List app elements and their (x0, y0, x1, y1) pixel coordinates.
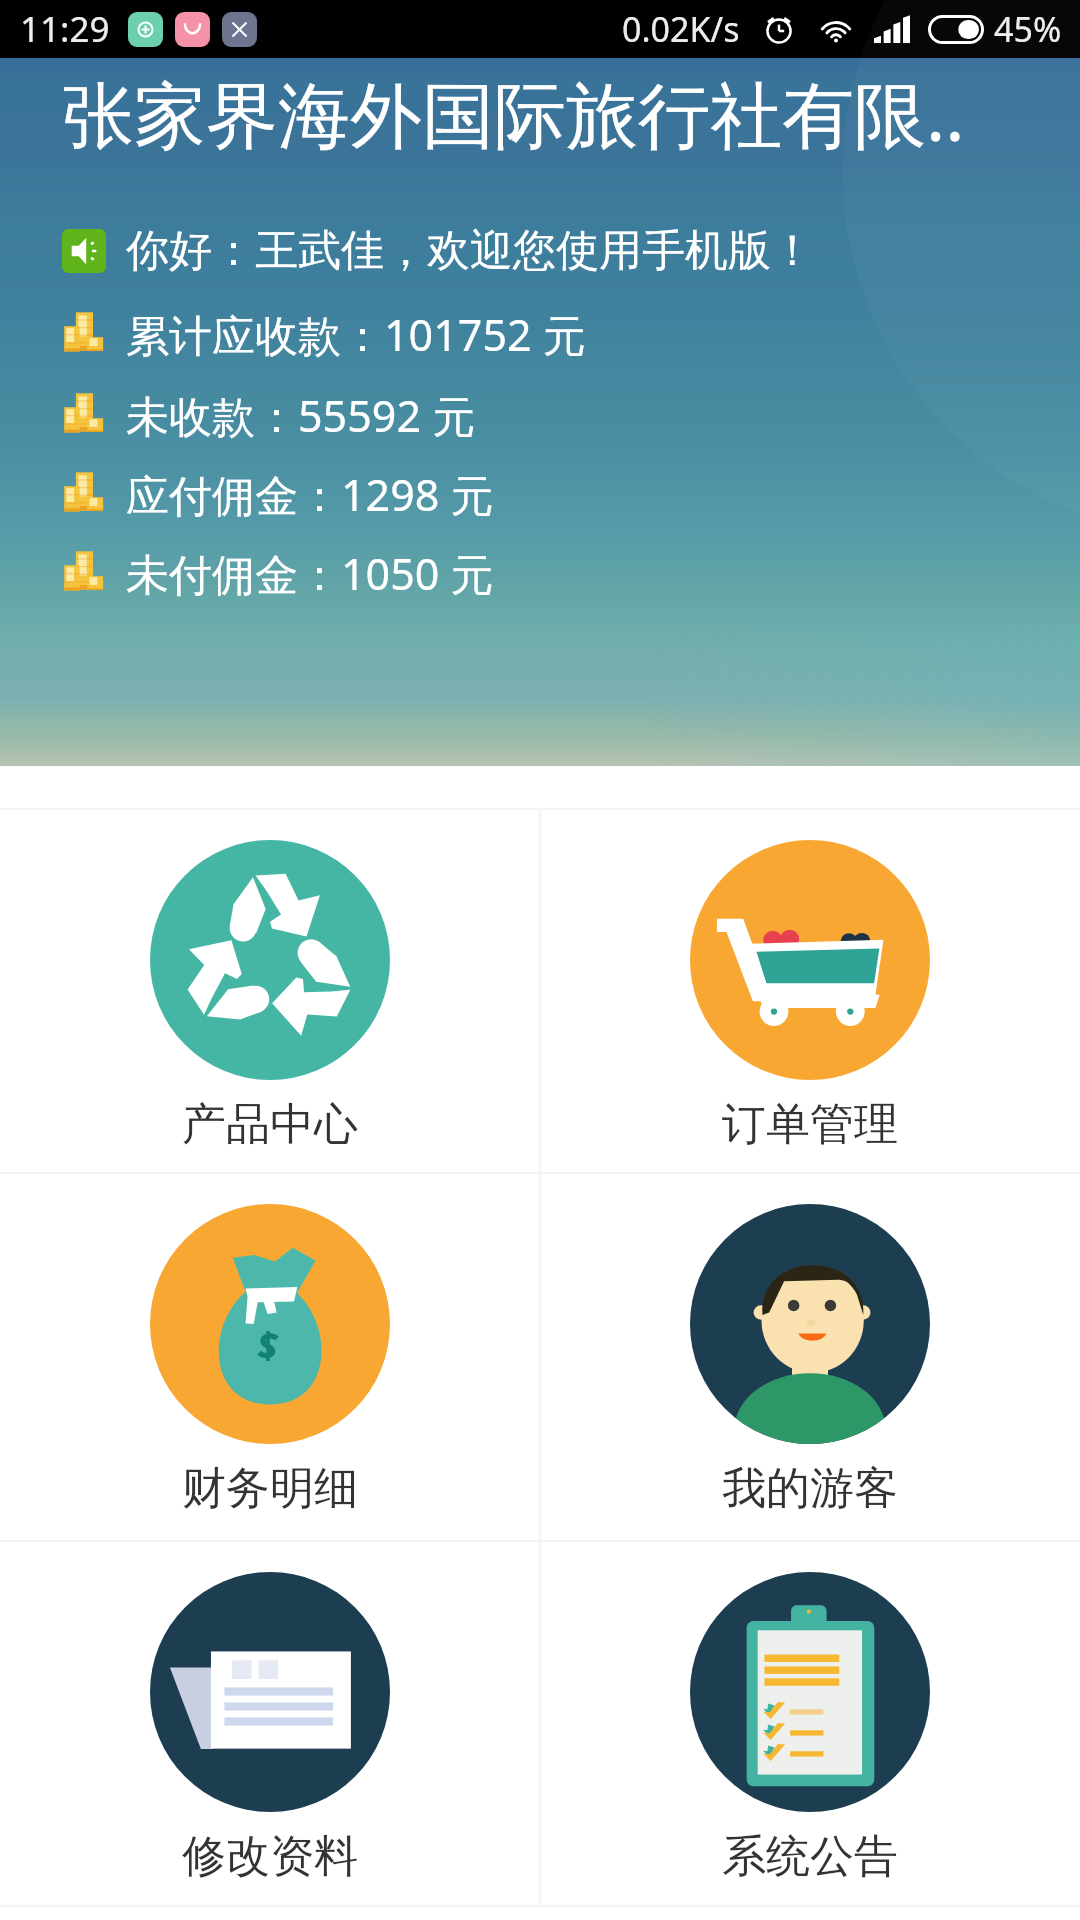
staticText: 财务明细 (182, 1461, 358, 1516)
button[interactable]: 订单管理 (540, 808, 1080, 1172)
staticText: 未付佣金：1050 元 (126, 544, 494, 600)
staticText: 未收款：55592 元 (126, 386, 476, 442)
staticText: 我的游客 (722, 1461, 898, 1516)
staticText: 11:29 (20, 5, 110, 53)
button[interactable]: 修改资料 (0, 1540, 540, 1905)
staticText: 你好：王武佳，欢迎您使用手机版！ (126, 224, 814, 278)
staticText: 订单管理 (722, 1097, 898, 1152)
staticText: 张家界海外国际旅行社有限.. (62, 64, 965, 162)
button[interactable]: 产品中心 (0, 808, 540, 1172)
staticText: 产品中心 (182, 1097, 358, 1152)
staticText: 系统公告 (722, 1829, 898, 1884)
button[interactable]: 我的游客 (540, 1172, 1080, 1540)
staticText: 0.02K/s (622, 6, 740, 52)
button[interactable]: 财务明细 (0, 1172, 540, 1540)
staticText: 45% (994, 6, 1062, 52)
staticText: 应付佣金：1298 元 (126, 465, 494, 521)
staticText: 修改资料 (182, 1829, 358, 1884)
button[interactable]: 系统公告 (540, 1540, 1080, 1905)
staticText: 累计应收款：101752 元 (126, 305, 586, 361)
